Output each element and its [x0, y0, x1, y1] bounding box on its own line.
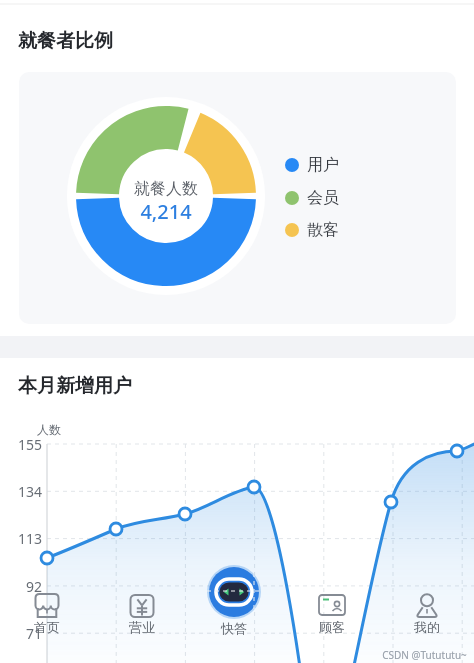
staticText: 我的 [414, 619, 440, 635]
staticText: 就餐者比例 [18, 29, 113, 53]
button[interactable]: 顾客 [287, 578, 377, 650]
staticText: 用户 [307, 155, 339, 175]
button[interactable]: 营业 [97, 578, 187, 650]
staticText: 会员 [307, 188, 339, 208]
staticText: 就餐人数 [134, 179, 198, 199]
staticText: 本月新增用户 [18, 374, 132, 398]
button[interactable]: 首页 [2, 578, 92, 650]
staticText: CSDN @Tutututu~ [382, 648, 467, 662]
staticText: 4,214 [140, 198, 192, 225]
staticText: 155 [18, 435, 43, 453]
staticText: 散客 [307, 220, 339, 240]
staticText: 首页 [34, 619, 60, 635]
button[interactable]: 用户 [282, 149, 382, 181]
staticText: 快答 [221, 620, 247, 636]
button[interactable]: 我的 [382, 578, 472, 650]
staticText: 人数 [37, 422, 61, 437]
staticText: 营业 [129, 619, 155, 635]
staticText: 134 [18, 482, 43, 500]
button[interactable]: 散客 [282, 214, 382, 246]
staticText: 71 [26, 624, 43, 642]
staticText: 顾客 [319, 619, 345, 635]
button[interactable] [207, 565, 261, 619]
button[interactable]: 会员 [282, 182, 382, 214]
staticText: 113 [18, 529, 43, 547]
staticText: 92 [26, 577, 43, 595]
